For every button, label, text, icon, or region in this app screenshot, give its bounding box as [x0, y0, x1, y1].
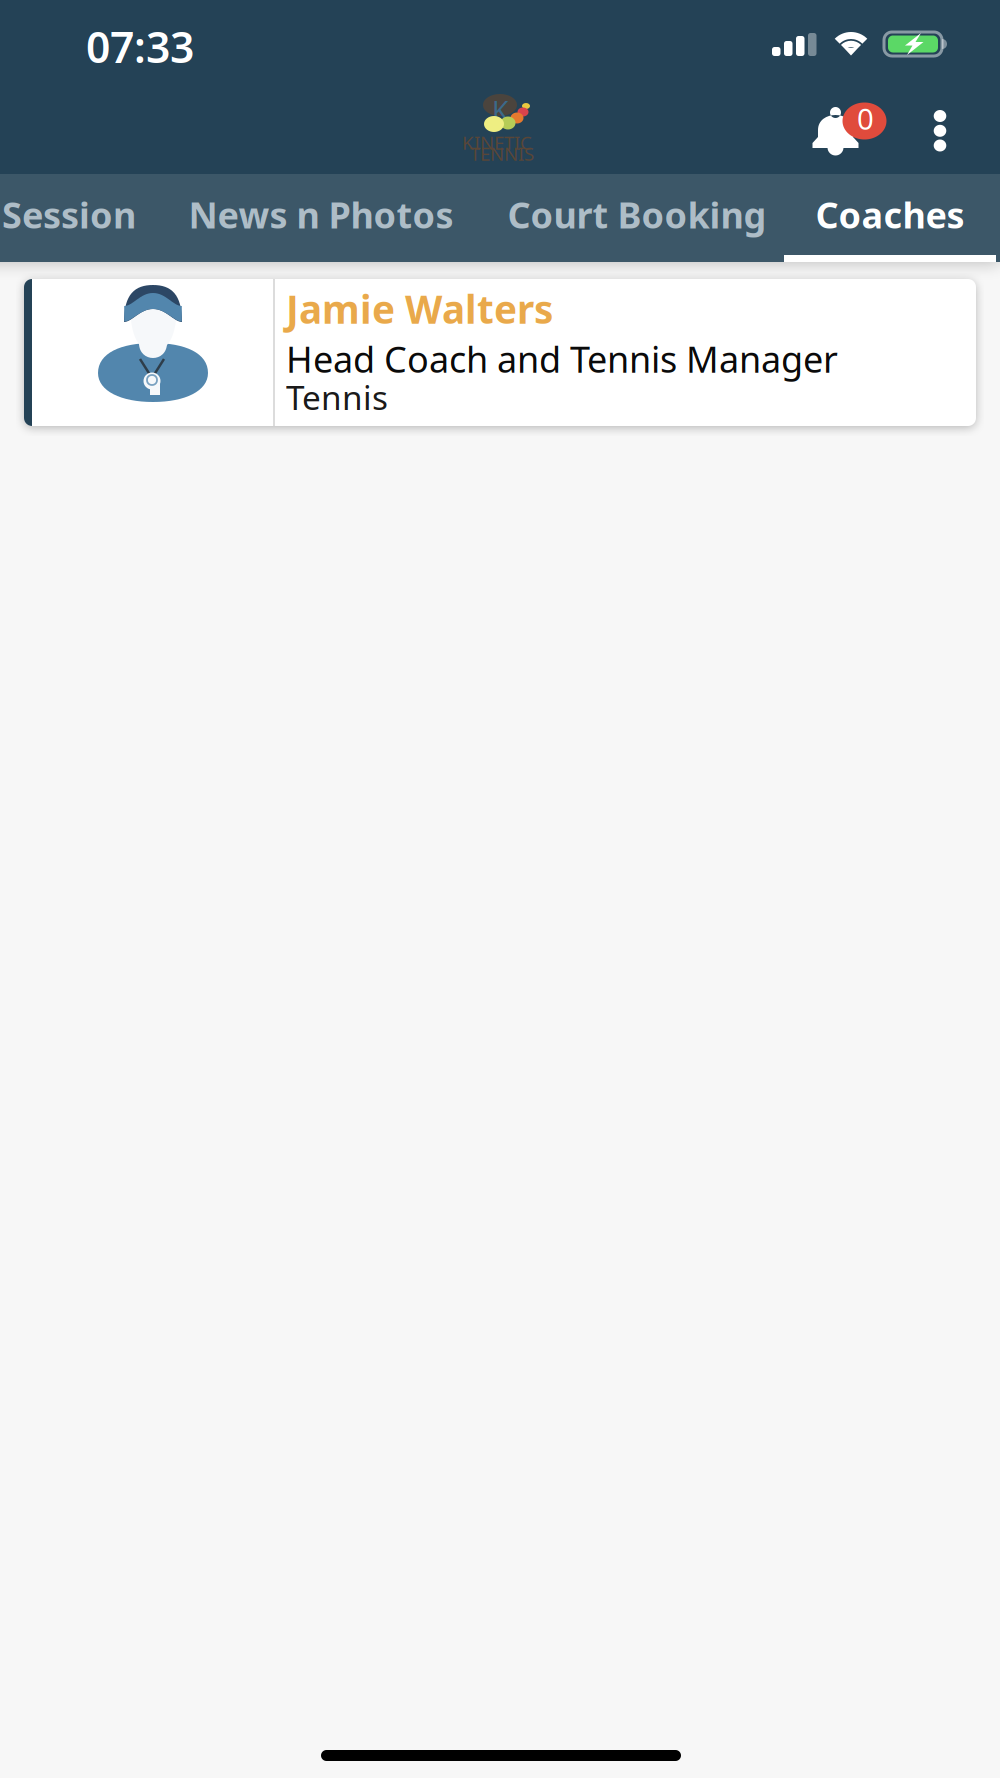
button[interactable]: Court Booking — [467, 174, 807, 262]
staticText: KINETIC — [462, 130, 532, 155]
staticText: Session — [2, 191, 136, 238]
button[interactable]: More options — [913, 100, 967, 170]
staticText: TENNIS — [470, 141, 534, 166]
button[interactable]: Session — [0, 174, 165, 262]
staticText: 0 — [857, 99, 874, 138]
button[interactable]: Notifications — [811, 102, 903, 178]
staticText: Tennis — [286, 375, 388, 419]
staticText: Coaches — [815, 191, 964, 238]
staticText: Court Booking — [507, 191, 766, 238]
button[interactable]: Coaches — [784, 174, 996, 262]
button[interactable]: Jamie Walters — [24, 279, 976, 426]
staticText: Jamie Walters — [286, 283, 553, 334]
staticText: 07:33 — [86, 18, 194, 75]
staticText: News n Photos — [188, 191, 453, 238]
button[interactable]: News n Photos — [163, 174, 479, 262]
staticText: K — [492, 93, 509, 128]
staticText: Head Coach and Tennis Manager — [286, 335, 838, 383]
